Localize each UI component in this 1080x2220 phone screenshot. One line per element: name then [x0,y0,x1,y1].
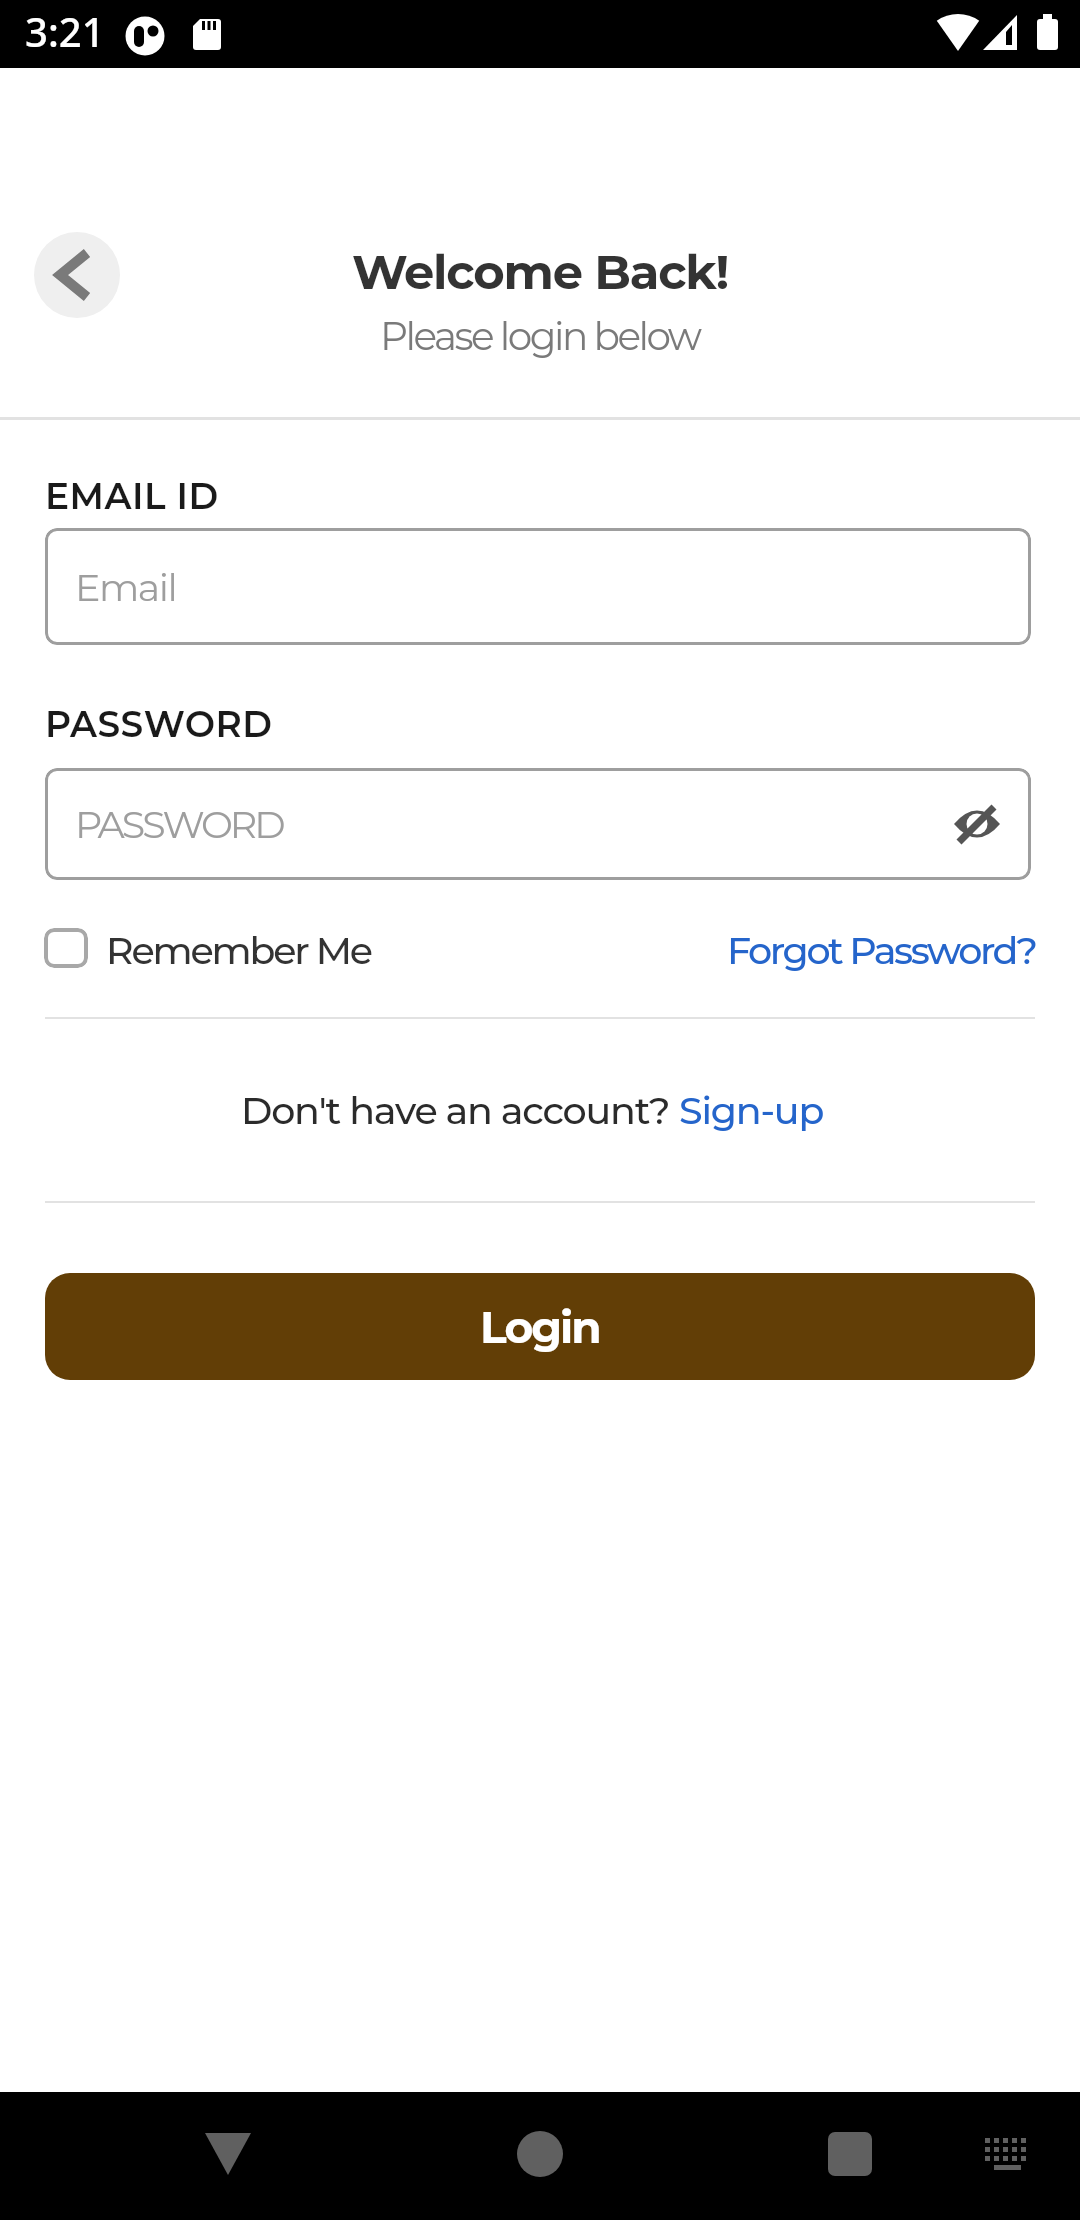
staticText: PASSWORD [45,702,273,746]
button[interactable]: Email [45,528,1031,645]
staticText: Don't have an account? [241,1087,679,1133]
staticText: Login [480,1300,600,1354]
staticText: EMAIL ID [45,474,219,518]
staticText: Email [75,564,177,610]
button[interactable] [44,928,88,968]
button[interactable]: Sign-up [679,1087,824,1133]
staticText: PASSWORD [75,801,283,847]
staticText: 3:21 [25,4,105,58]
button[interactable] [720,2092,1080,2220]
button[interactable]: Login [45,1273,1035,1380]
button[interactable] [953,800,1001,848]
button[interactable] [34,232,120,318]
button[interactable] [360,2092,720,2220]
button[interactable]: PASSWORD [45,768,1031,880]
staticText: Welcome Back! [352,243,729,302]
button[interactable]: Forgot Password? [727,927,1036,973]
staticText: Remember Me [106,927,371,973]
button[interactable] [0,2092,360,2220]
staticText: Please login below [380,312,700,360]
